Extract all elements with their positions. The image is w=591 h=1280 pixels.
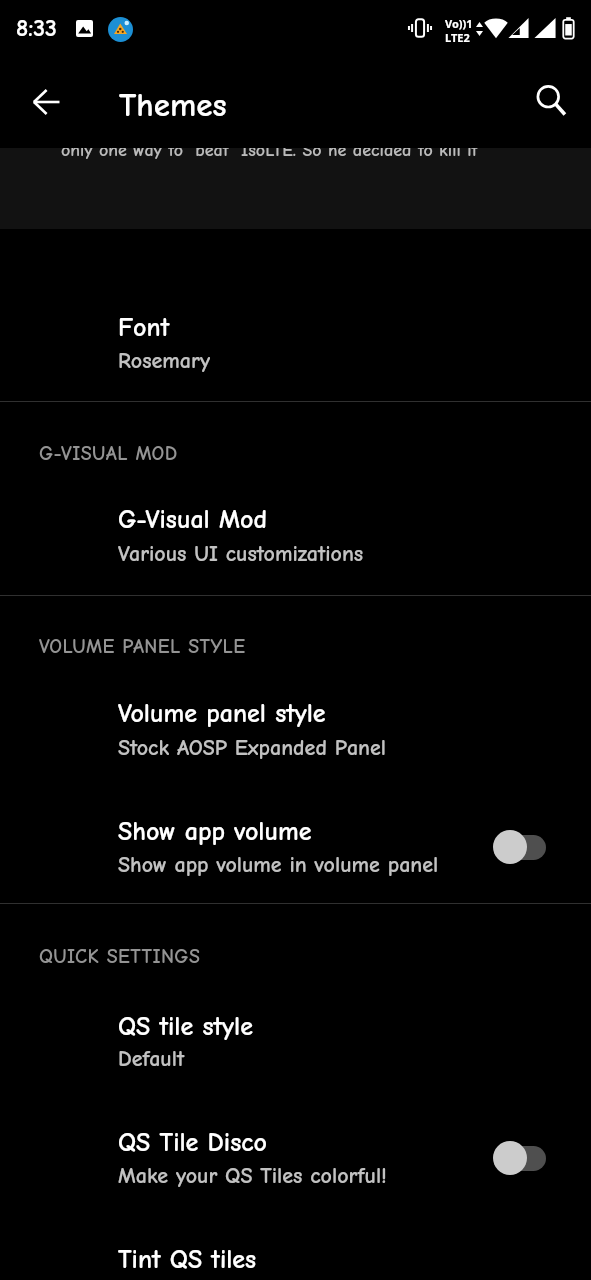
button[interactable]: Toggle [493,1138,551,1178]
staticText: Various UI customizations [118,541,364,566]
button[interactable]: Show app volume [0,790,591,903]
staticText: Rosemary [118,348,210,373]
button[interactable]: Font [0,288,591,401]
staticText: Tint QS tiles [118,1245,257,1275]
staticText: only one way to "beat" IsoLTE. So he dec… [61,140,478,161]
staticText: Vo))1 [445,16,473,31]
button[interactable]: Search [529,78,575,124]
staticText: QUICK SETTINGS [39,945,201,968]
button[interactable]: Volume panel style [0,674,591,790]
staticText: Show app volume in volume panel [118,852,439,877]
button[interactable]: Tint QS tiles [0,1218,591,1280]
staticText: Default [118,1046,185,1071]
button[interactable]: G-Visual Mod [0,480,591,595]
staticText: G-Visual Mod [118,505,267,535]
staticText: 8:33 [16,14,57,42]
staticText: Show app volume [118,817,312,847]
button[interactable]: Toggle [493,827,551,867]
button[interactable]: Back [23,79,69,125]
staticText: LTE2 [445,30,470,45]
staticText: Stock AOSP Expanded Panel [118,735,387,760]
staticText: Themes [119,86,227,124]
staticText: Font [118,313,170,343]
staticText: G-VISUAL MOD [39,442,178,465]
staticText: VOLUME PANEL STYLE [39,635,246,658]
staticText: QS tile style [118,1012,253,1042]
staticText: Volume panel style [118,699,326,729]
staticText: Make your QS Tiles colorful! [118,1163,387,1188]
button[interactable]: QS Tile Disco [0,1101,591,1218]
button[interactable]: QS tile style [0,987,591,1101]
staticText: QS Tile Disco [118,1128,267,1158]
